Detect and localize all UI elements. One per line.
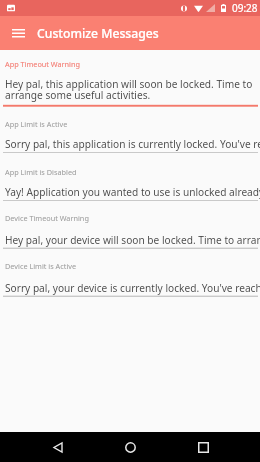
button[interactable]: Back bbox=[43, 432, 73, 462]
staticText: Device Timeout Warning bbox=[5, 213, 89, 223]
staticText: Hey pal, this application will soon be l… bbox=[5, 77, 258, 102]
button[interactable]: App Limit is Disabled bbox=[0, 153, 260, 201]
staticText: Hey pal, your device will soon be locked… bbox=[5, 233, 260, 247]
button[interactable]: App Limit is Active bbox=[0, 107, 260, 153]
button[interactable]: Recent apps bbox=[188, 432, 218, 462]
staticText: Device Limit is Active bbox=[5, 261, 77, 271]
staticText: Sorry pal, your device is currently lock… bbox=[5, 281, 260, 295]
staticText: App Timeout Warning bbox=[5, 59, 81, 69]
staticText: Sorry pal, this application is currently… bbox=[5, 137, 260, 151]
staticText: App Limit is Active bbox=[5, 119, 68, 129]
button[interactable]: Open navigation drawer bbox=[0, 16, 34, 50]
button[interactable]: Home bbox=[115, 432, 145, 462]
staticText: 09:28 bbox=[232, 1, 258, 15]
button[interactable]: App Timeout Warning bbox=[0, 50, 260, 107]
button[interactable]: Device Limit is Active bbox=[0, 249, 260, 297]
button[interactable]: Device Timeout Warning bbox=[0, 201, 260, 249]
staticText: App Limit is Disabled bbox=[5, 167, 77, 177]
staticText: Customize Messages bbox=[37, 25, 159, 42]
staticText: Yay! Application you wanted to use is un… bbox=[5, 185, 260, 199]
